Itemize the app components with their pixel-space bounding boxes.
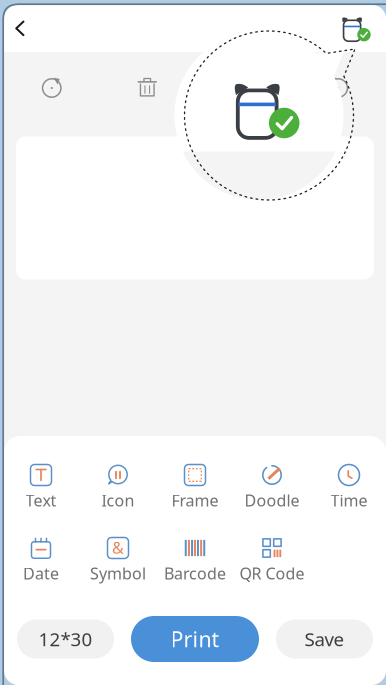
staticText: Save bbox=[304, 627, 344, 651]
staticText: Time bbox=[330, 490, 367, 511]
button[interactable]: Delete bbox=[99, 52, 195, 124]
staticText: Doodle bbox=[244, 490, 299, 511]
button[interactable]: 12*30 bbox=[17, 619, 114, 658]
button[interactable]: Frame bbox=[158, 463, 232, 511]
button[interactable]: Undo bbox=[4, 52, 99, 124]
button[interactable]: Save bbox=[276, 619, 373, 658]
button[interactable]: Rotate bbox=[195, 52, 290, 124]
staticText: Date bbox=[23, 563, 59, 584]
staticText: & bbox=[112, 537, 124, 558]
button[interactable]: Redo bbox=[290, 52, 386, 124]
button[interactable]: Barcode bbox=[158, 536, 232, 584]
button[interactable]: Doodle bbox=[235, 463, 309, 511]
button[interactable]: Icon bbox=[81, 463, 155, 511]
button[interactable]: Date bbox=[4, 536, 78, 584]
staticText: Barcode bbox=[164, 563, 226, 584]
staticText: QR Code bbox=[239, 563, 304, 584]
staticText: 12*30 bbox=[38, 627, 92, 651]
button[interactable]: Print bbox=[131, 616, 259, 662]
staticText: Print bbox=[170, 625, 219, 653]
button[interactable]: Printer connected bbox=[341, 5, 372, 52]
staticText: Icon bbox=[101, 490, 134, 511]
button[interactable]: Back bbox=[4, 5, 36, 52]
button[interactable]: Text bbox=[4, 463, 78, 511]
button[interactable]: & bbox=[81, 536, 155, 584]
button[interactable]: Time bbox=[312, 463, 386, 511]
button[interactable]: QR Code bbox=[235, 536, 309, 584]
staticText: Symbol bbox=[90, 563, 146, 584]
staticText: Text bbox=[25, 490, 56, 511]
staticText: Frame bbox=[171, 490, 218, 511]
